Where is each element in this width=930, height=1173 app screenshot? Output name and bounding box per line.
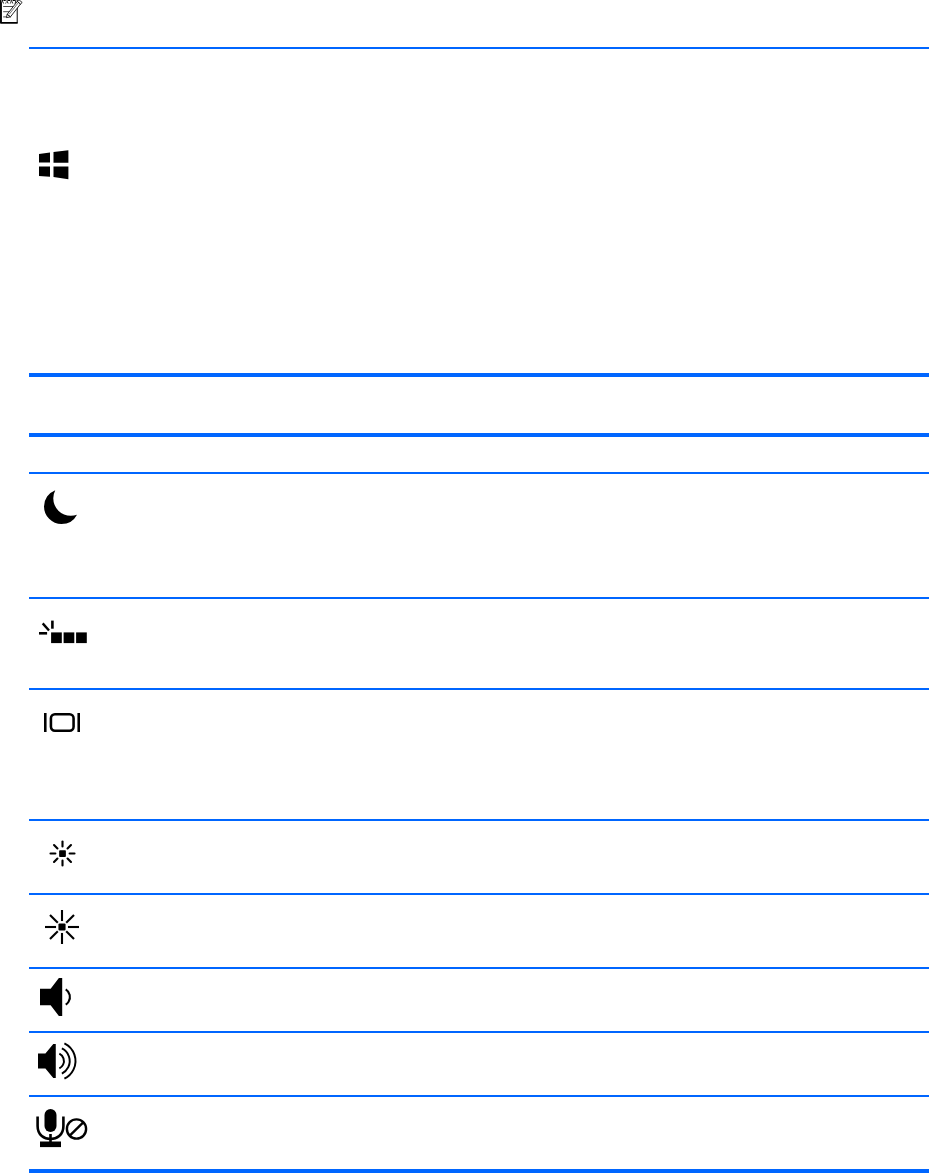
button[interactable]: Decrease speaker volume xyxy=(40,978,70,1016)
button[interactable]: Windows key xyxy=(39,150,69,180)
button[interactable]: Increase screen brightness xyxy=(45,910,79,944)
button[interactable]: Mute the microphone xyxy=(34,1104,90,1160)
button[interactable]: Note xyxy=(0,0,26,25)
button[interactable]: Sleep xyxy=(44,489,79,524)
button[interactable]: Decrease screen brightness xyxy=(50,841,75,866)
button[interactable]: Switch screen image xyxy=(44,713,80,732)
button[interactable]: Keyboard backlight xyxy=(39,620,87,644)
button[interactable]: Increase speaker volume xyxy=(38,1044,75,1078)
